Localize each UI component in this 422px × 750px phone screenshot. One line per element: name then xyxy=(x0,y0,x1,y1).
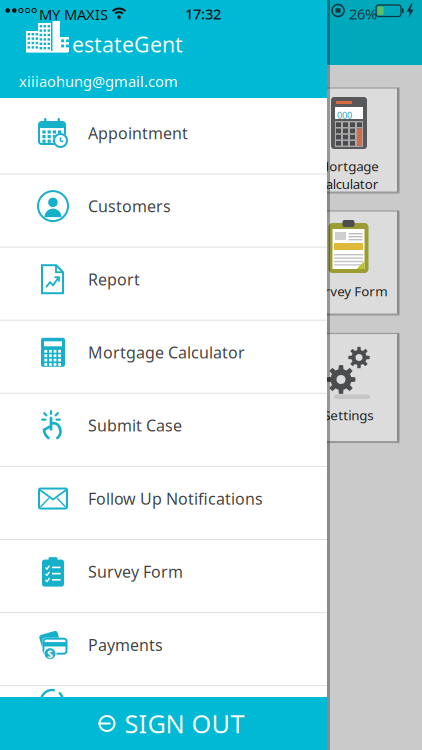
staticText: Survey Form xyxy=(309,282,387,300)
staticText: Customers xyxy=(88,195,171,217)
button[interactable]: SIGN OUT xyxy=(0,697,327,750)
button[interactable]: Appointment xyxy=(0,98,327,168)
button[interactable]: Survey Form xyxy=(283,211,399,315)
button[interactable]: $ xyxy=(0,610,327,680)
button[interactable]: Submit Case xyxy=(0,390,327,460)
button[interactable]: Mortgage Calculator xyxy=(0,317,327,387)
staticText: Follow Up Notifications xyxy=(88,488,263,509)
staticText: 000 xyxy=(337,109,352,121)
staticText: $ xyxy=(47,647,53,661)
staticText: 26% xyxy=(349,4,377,23)
button[interactable]: Survey Form xyxy=(0,537,327,607)
staticText: estateGent xyxy=(72,30,183,58)
staticText: Mortgage Calculator xyxy=(317,157,379,193)
staticText: Mortgage Calculator xyxy=(88,342,245,363)
staticText: MY MAXIS xyxy=(39,4,108,24)
staticText: 17:32 xyxy=(185,4,221,23)
button[interactable]: Report xyxy=(0,244,327,314)
staticText: Submit Case xyxy=(88,415,182,436)
button[interactable]: Settings xyxy=(283,333,399,442)
staticText: Report xyxy=(88,269,140,290)
staticText: Appointment xyxy=(88,122,188,144)
staticText: SIGN OUT xyxy=(124,707,244,740)
button[interactable]: Follow Up Notifications xyxy=(0,463,327,533)
button[interactable]: 000 xyxy=(283,88,399,193)
staticText: Survey Form xyxy=(88,561,183,582)
staticText: xiiiaohung@gmail.com xyxy=(19,71,178,91)
staticText: Payments xyxy=(88,634,163,655)
staticText: Settings xyxy=(323,406,373,424)
button[interactable]: Customers xyxy=(0,171,327,241)
